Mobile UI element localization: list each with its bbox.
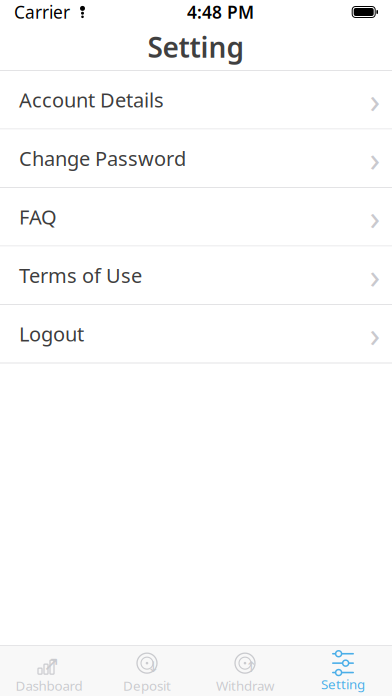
staticText: ↗: [43, 652, 60, 675]
staticText: ›: [369, 135, 380, 181]
button[interactable]: ↑: [196, 644, 294, 696]
button[interactable]: ↓: [98, 644, 196, 696]
staticText: Terms of Use: [19, 262, 142, 289]
staticText: Withdraw: [216, 677, 274, 694]
button[interactable]: Logout: [0, 305, 392, 363]
staticText: Change Password: [19, 145, 186, 172]
button[interactable]: Change Password: [0, 129, 392, 188]
button[interactable]: Terms of Use: [0, 246, 392, 305]
button[interactable]: Setting: [294, 644, 392, 696]
staticText: ›: [369, 252, 380, 298]
staticText: ↑: [245, 658, 257, 675]
staticText: FAQ: [19, 203, 57, 230]
staticText: ›: [369, 311, 380, 357]
staticText: Carrier: [14, 0, 70, 23]
staticText: ›: [369, 194, 380, 240]
staticText: Account Details: [19, 86, 164, 113]
staticText: Deposit: [123, 677, 171, 694]
button[interactable]: FAQ: [0, 188, 392, 246]
button[interactable]: Account Details: [0, 71, 392, 129]
staticText: Logout: [19, 320, 84, 347]
staticText: Setting: [147, 28, 244, 66]
staticText: Dashboard: [15, 677, 82, 694]
staticText: ›: [369, 77, 380, 123]
staticText: 4:48 PM: [187, 0, 254, 23]
button[interactable]: ↗: [0, 644, 98, 696]
staticText: ↓: [147, 658, 159, 675]
staticText: Setting: [321, 675, 365, 693]
